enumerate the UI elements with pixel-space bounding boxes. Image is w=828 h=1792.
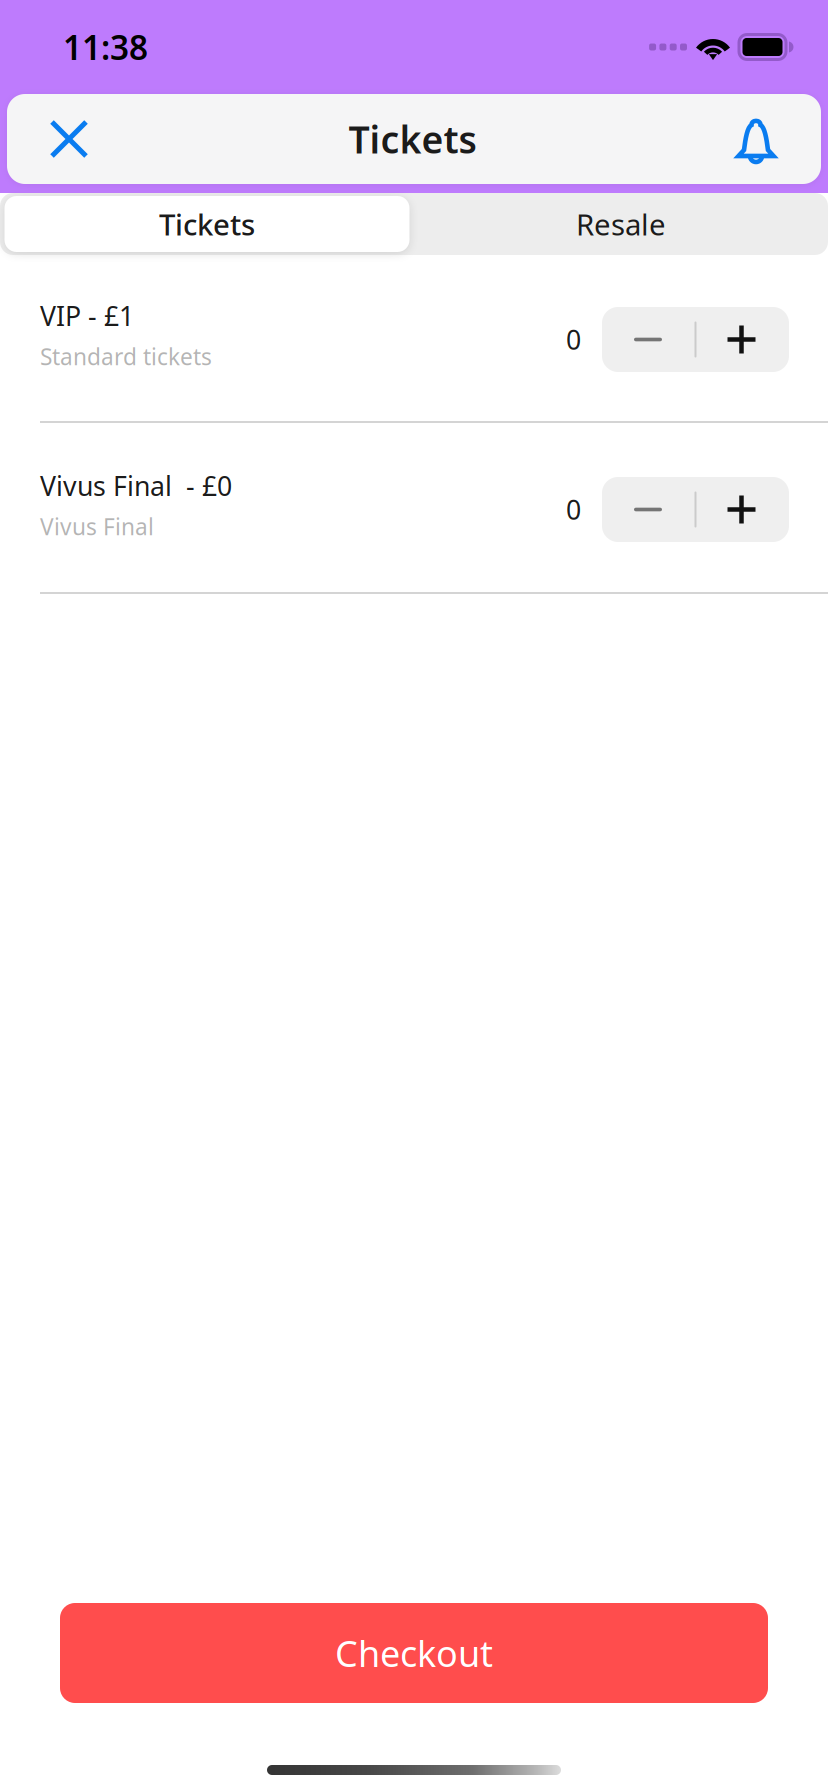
staticText: Tickets (348, 114, 476, 164)
staticText: Tickets (159, 204, 255, 243)
button[interactable]: Decrease quantity (602, 477, 694, 542)
staticText: 11:38 (63, 25, 148, 69)
button[interactable]: Resale (414, 193, 828, 255)
button[interactable]: Tickets (0, 193, 414, 255)
staticText: Vivus Final - £0 (40, 468, 232, 503)
staticText: Vivus Final (40, 511, 154, 541)
staticText: VIP - £1 (40, 298, 134, 333)
button[interactable]: Increase quantity (694, 477, 789, 542)
button[interactable]: Checkout (60, 1603, 768, 1703)
staticText: Resale (576, 204, 666, 243)
button[interactable]: Notifications (711, 94, 801, 184)
staticText: Standard tickets (40, 341, 212, 371)
button[interactable]: Increase quantity (694, 307, 789, 372)
staticText: 0 (566, 322, 581, 357)
staticText: 0 (566, 492, 581, 527)
button[interactable]: Decrease quantity (602, 307, 694, 372)
button[interactable]: Close (24, 94, 114, 184)
staticText: Checkout (335, 1629, 493, 1677)
